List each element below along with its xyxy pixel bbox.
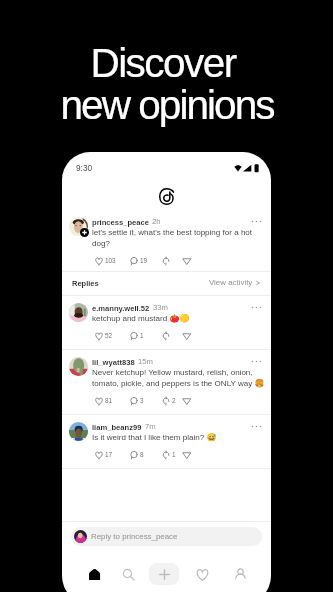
button[interactable]: heart [93, 255, 105, 267]
button[interactable]: share [181, 449, 193, 461]
button[interactable]: More options [251, 217, 262, 226]
button[interactable]: heart [93, 330, 105, 342]
staticText: Reply to princess_peace [91, 532, 178, 541]
button[interactable]: share [181, 330, 193, 342]
staticText: 1 [172, 451, 176, 458]
staticText: Discover [90, 40, 236, 85]
staticText: tomato, pickle, and peppers is the ONLY … [92, 379, 265, 388]
button[interactable]: repost [160, 449, 172, 461]
staticText: dog? [92, 239, 110, 248]
staticText: 2h [152, 217, 161, 226]
staticText: 81 [105, 397, 113, 404]
staticText: let's settle it, what's the best topping… [92, 228, 253, 237]
button[interactable]: heart [93, 449, 105, 461]
button[interactable]: reply [128, 255, 140, 267]
button[interactable]: plus [149, 563, 179, 585]
staticText: new opinions [60, 82, 274, 127]
staticText: 3 [140, 397, 144, 404]
staticText: 52 [105, 332, 113, 339]
staticText: Replies [72, 279, 99, 287]
staticText: 17 [105, 451, 113, 458]
button[interactable]: More options [251, 303, 262, 312]
staticText: e.manny.well.52 [92, 304, 150, 312]
button[interactable]: heart [190, 563, 214, 585]
button[interactable]: More options [251, 357, 262, 366]
staticText: 19 [140, 257, 148, 264]
staticText: Never ketchup! Yellow mustard, relish, o… [92, 368, 253, 377]
button[interactable]: Replies [72, 271, 261, 294]
button[interactable]: repost [160, 395, 172, 407]
button[interactable]: Reply to princess_peace [71, 527, 262, 546]
staticText: ketchup and mustard 🍅🟡 [92, 314, 190, 323]
button[interactable]: home [82, 563, 106, 585]
staticText: 33m [153, 303, 168, 312]
button[interactable]: heart [93, 395, 105, 407]
staticText: 9:30 [76, 163, 93, 172]
staticText: View activity [209, 278, 253, 287]
button[interactable]: More options [251, 422, 262, 431]
button[interactable]: search [116, 563, 140, 585]
staticText: lil_wyatt838 [92, 358, 135, 366]
button[interactable]: reply [128, 330, 140, 342]
button[interactable]: reply [128, 395, 140, 407]
staticText: 8 [140, 451, 144, 458]
button[interactable]: share [181, 395, 193, 407]
staticText: 103 [105, 257, 116, 264]
staticText: princess_peace [92, 218, 149, 226]
staticText: 7m [145, 422, 156, 431]
button[interactable]: reply [128, 449, 140, 461]
staticText: Is it weird that I like them plain? 😅 [92, 433, 217, 442]
staticText: 15m [138, 357, 153, 366]
button[interactable]: person [228, 563, 252, 585]
staticText: liam_beanz99 [92, 423, 142, 431]
button[interactable]: repost [160, 330, 172, 342]
staticText: 1 [140, 332, 144, 339]
button[interactable]: share [181, 255, 193, 267]
button[interactable]: repost [160, 255, 172, 267]
staticText: 2 [172, 397, 176, 404]
